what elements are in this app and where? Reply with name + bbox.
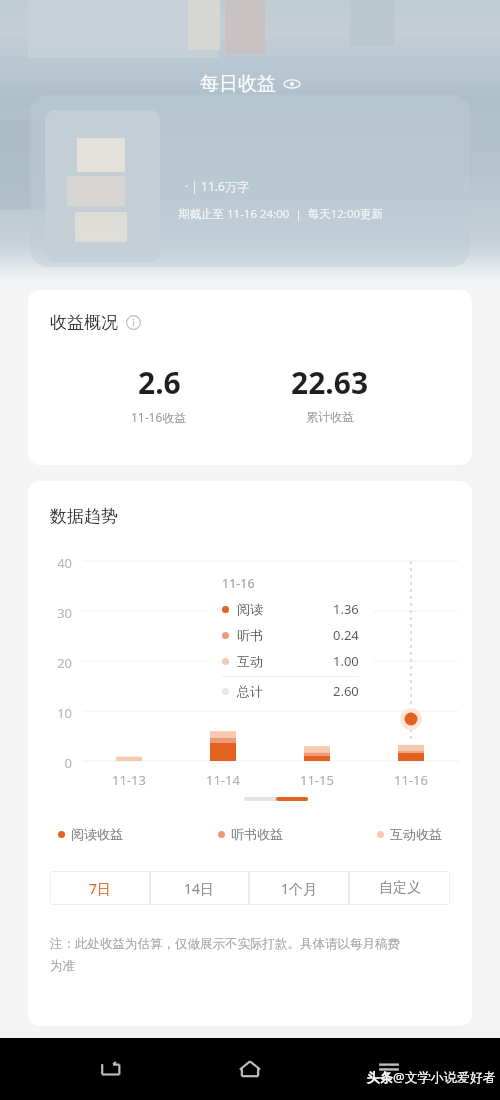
other: Info: [126, 315, 141, 330]
button[interactable]: Back: [83, 1041, 139, 1097]
button[interactable]: 自定义: [350, 872, 449, 904]
staticText: 11-16: [222, 575, 255, 592]
button[interactable]: 14日: [151, 872, 248, 904]
staticText: 头条: [367, 1069, 393, 1085]
staticText: 30: [46, 604, 72, 622]
staticText: 互动: [237, 653, 263, 669]
staticText: 7日: [89, 879, 112, 898]
button[interactable]: 听书收益: [218, 826, 283, 842]
staticText: 2.60: [333, 682, 359, 700]
staticText: 2.6: [138, 362, 181, 403]
button[interactable]: 每日收益: [200, 72, 300, 96]
staticText: 20: [46, 654, 72, 672]
staticText: 数据趋势: [50, 506, 118, 527]
staticText: 互动收益: [390, 826, 442, 842]
staticText: 注：此处收益为估算，仅做展示不实际打款。具体请以每月稿费 为准: [50, 936, 460, 974]
staticText: 1个月: [281, 879, 318, 898]
staticText: · | 11.6万字: [185, 178, 249, 194]
button[interactable]: 收益概况: [28, 290, 472, 465]
button[interactable]: Home: [222, 1041, 278, 1097]
staticText: 听书收益: [231, 826, 283, 842]
staticText: 累计收益: [306, 409, 354, 424]
staticText: 收益概况: [50, 312, 118, 333]
staticText: 0: [46, 754, 72, 772]
staticText: 22.63: [291, 362, 369, 403]
staticText: 1.00: [333, 652, 359, 670]
button[interactable]: 7日: [51, 872, 149, 904]
staticText: 期截止至 11-16 24:00 | 每天12:00更新: [178, 206, 384, 222]
staticText: 每日收益: [200, 72, 276, 96]
staticText: 11-16收益: [131, 409, 187, 425]
staticText: 40: [46, 554, 72, 572]
staticText: 10: [46, 704, 72, 722]
staticText: 11-14: [206, 771, 240, 789]
staticText: 听书: [237, 627, 263, 643]
button[interactable]: 互动收益: [377, 826, 442, 842]
staticText: 0.24: [333, 626, 359, 644]
button[interactable]: Recents: [361, 1041, 417, 1097]
staticText: 阅读收益: [71, 826, 123, 842]
staticText: 11-16: [394, 771, 428, 789]
other: Toggle visibility: [284, 76, 300, 92]
staticText: 11-13: [112, 771, 146, 789]
staticText: 14日: [184, 879, 215, 898]
staticText: 阅读: [237, 601, 263, 617]
staticText: 总计: [237, 683, 263, 699]
button[interactable]: 1个月: [250, 872, 348, 904]
staticText: 11-15: [300, 771, 334, 789]
staticText: 自定义: [379, 879, 421, 897]
staticText: 1.36: [333, 600, 359, 618]
button[interactable]: 阅读收益: [58, 826, 123, 842]
staticText: @文学小说爱好者: [393, 1068, 496, 1086]
